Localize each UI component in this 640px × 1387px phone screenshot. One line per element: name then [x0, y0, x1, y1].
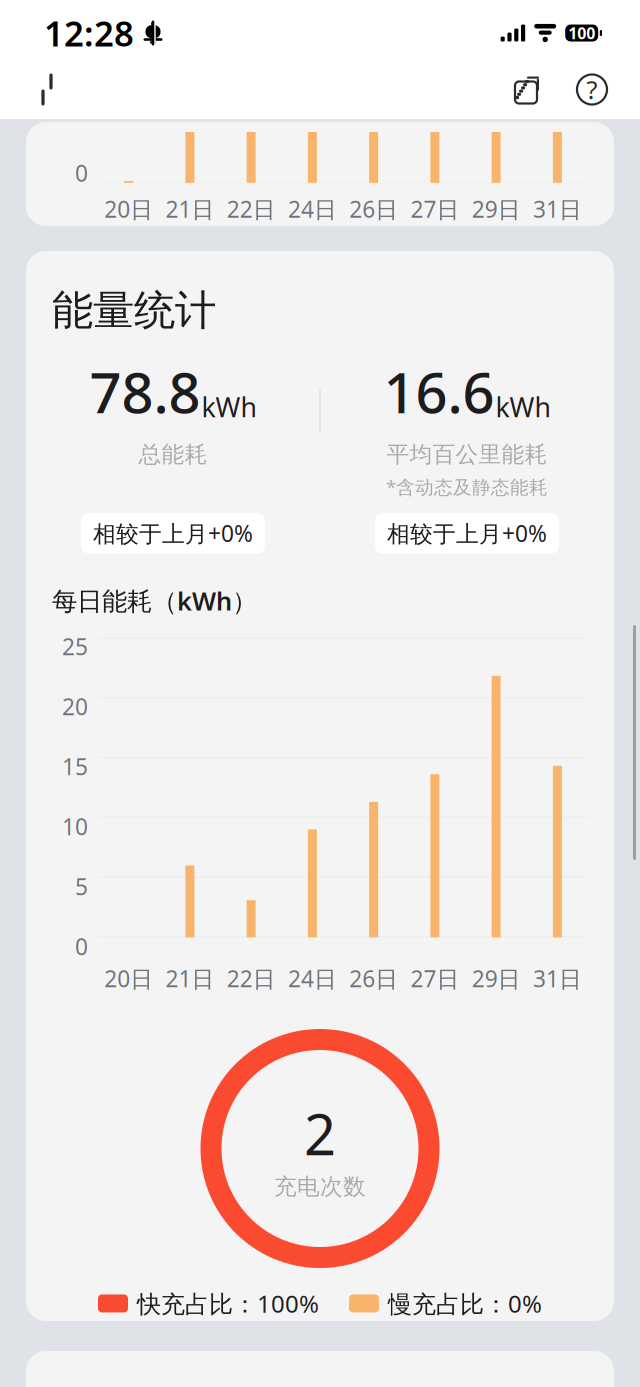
staticText: 78.8 — [89, 354, 200, 429]
staticText: 21日 — [165, 194, 214, 224]
button[interactable]: Back — [22, 60, 72, 118]
staticText: 22日 — [227, 194, 276, 224]
staticText: 21日 — [165, 963, 214, 993]
button[interactable]: Share — [500, 60, 552, 118]
staticText: 16.6 — [383, 354, 494, 429]
staticText: 慢充占比：0% — [388, 1287, 542, 1319]
staticText: 10 — [62, 811, 88, 841]
staticText: 29日 — [472, 194, 521, 224]
staticText: 31日 — [533, 963, 582, 993]
staticText: 20 — [62, 691, 88, 721]
staticText: 15 — [62, 751, 88, 781]
staticText: 0 — [75, 158, 88, 188]
staticText: 20日 — [104, 963, 153, 993]
staticText: *含动态及静态能耗 — [386, 474, 548, 499]
staticText: ? — [586, 73, 597, 106]
staticText: 能量统计 — [52, 285, 216, 336]
staticText: 5 — [75, 871, 88, 901]
staticText: 31日 — [533, 194, 582, 224]
staticText: 平均百公里能耗 — [386, 441, 547, 468]
staticText: 快充占比：100% — [137, 1287, 319, 1319]
button[interactable]: Help — [566, 60, 618, 118]
staticText: 12:28 — [44, 10, 134, 56]
staticText: 27日 — [410, 194, 459, 224]
staticText: 100 — [568, 22, 595, 44]
staticText: 总能耗 — [138, 441, 207, 468]
staticText: 0 — [75, 931, 88, 961]
staticText: 24日 — [288, 194, 337, 224]
staticText: 2 — [304, 1096, 336, 1171]
staticText: 27日 — [410, 963, 459, 993]
staticText: 26日 — [349, 194, 398, 224]
staticText: 26日 — [349, 963, 398, 993]
staticText: 22日 — [227, 963, 276, 993]
staticText: 29日 — [472, 963, 521, 993]
staticText: 每日能耗（kWh） — [52, 584, 257, 617]
staticText: kWh — [201, 389, 256, 425]
staticText: 25 — [62, 631, 88, 661]
staticText: 充电次数 — [274, 1173, 366, 1201]
staticText: 20日 — [104, 194, 153, 224]
staticText: 相较于上月+0% — [387, 518, 547, 548]
staticText: 24日 — [288, 963, 337, 993]
staticText: kWh — [495, 389, 550, 425]
staticText: 相较于上月+0% — [93, 518, 253, 548]
